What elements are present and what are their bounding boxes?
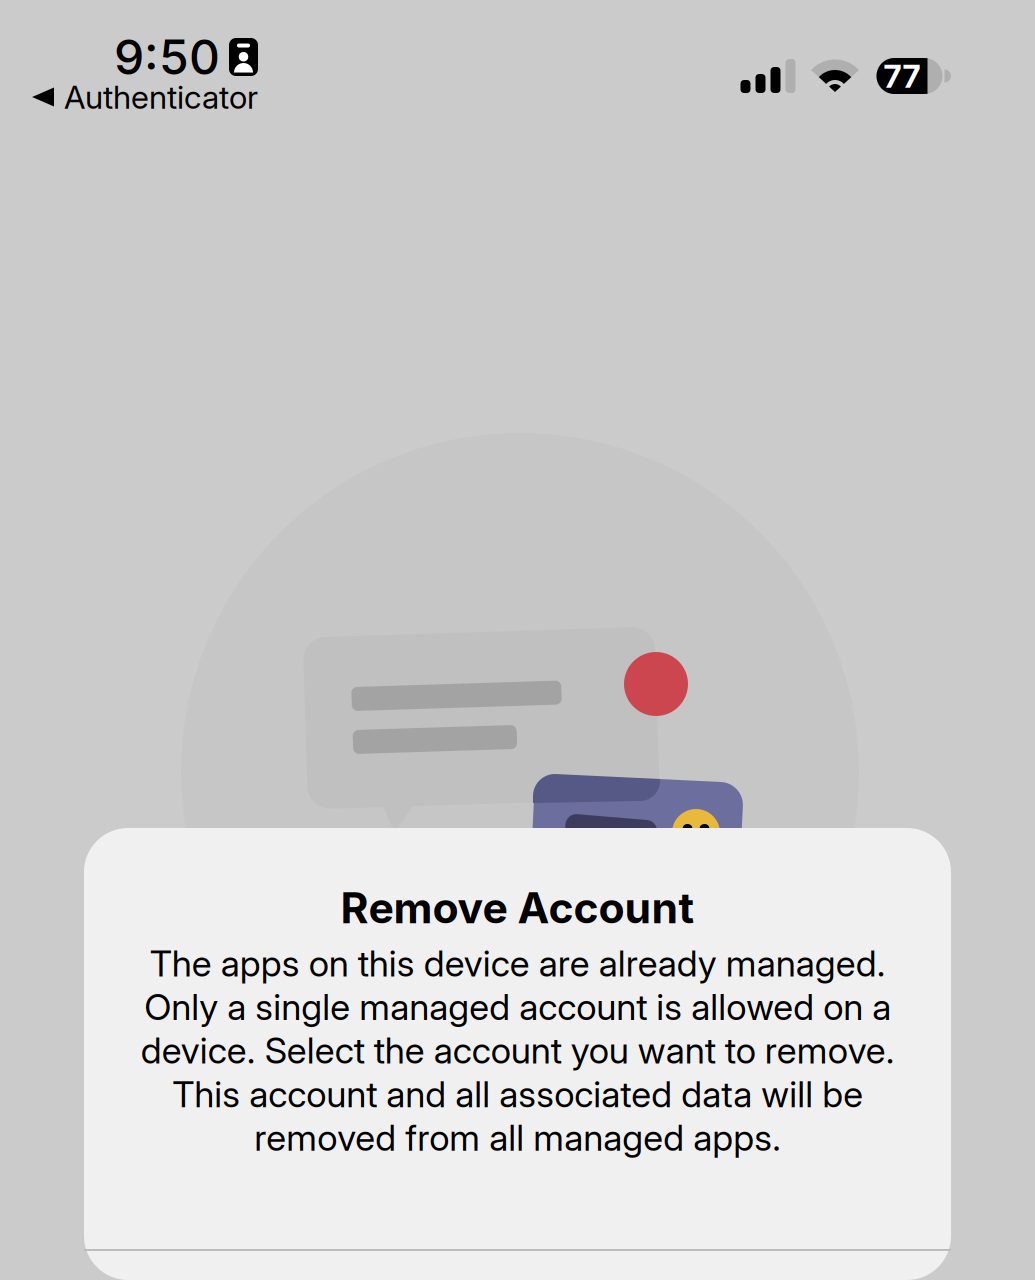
- staticText: The apps on this device are already mana…: [140, 942, 894, 1159]
- staticText: Authenticator: [64, 78, 258, 116]
- staticText: 77: [883, 57, 920, 95]
- staticText: 9:50: [114, 28, 220, 86]
- staticText: Remove Account: [340, 882, 694, 934]
- button[interactable]: Authenticator: [32, 78, 258, 116]
